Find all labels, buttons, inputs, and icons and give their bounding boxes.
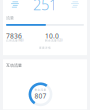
staticText: 查看详情 [39,46,51,49]
staticText: 已用流量(MB) [6,39,24,42]
staticText: 剩余流量(GB) [45,39,63,42]
staticText: 251 [33,0,57,14]
staticText: 互动流量 [6,63,22,68]
staticText: 7836 [6,31,22,40]
staticText: 流量 [6,15,14,20]
button[interactable]: Network [69,0,81,9]
staticText: 10.0 [45,31,59,40]
button[interactable]: 查看详情 [3,45,87,50]
button[interactable]: Signal [9,0,21,9]
staticText: 807 [34,92,46,100]
staticText: 剩余流量 [34,88,46,92]
